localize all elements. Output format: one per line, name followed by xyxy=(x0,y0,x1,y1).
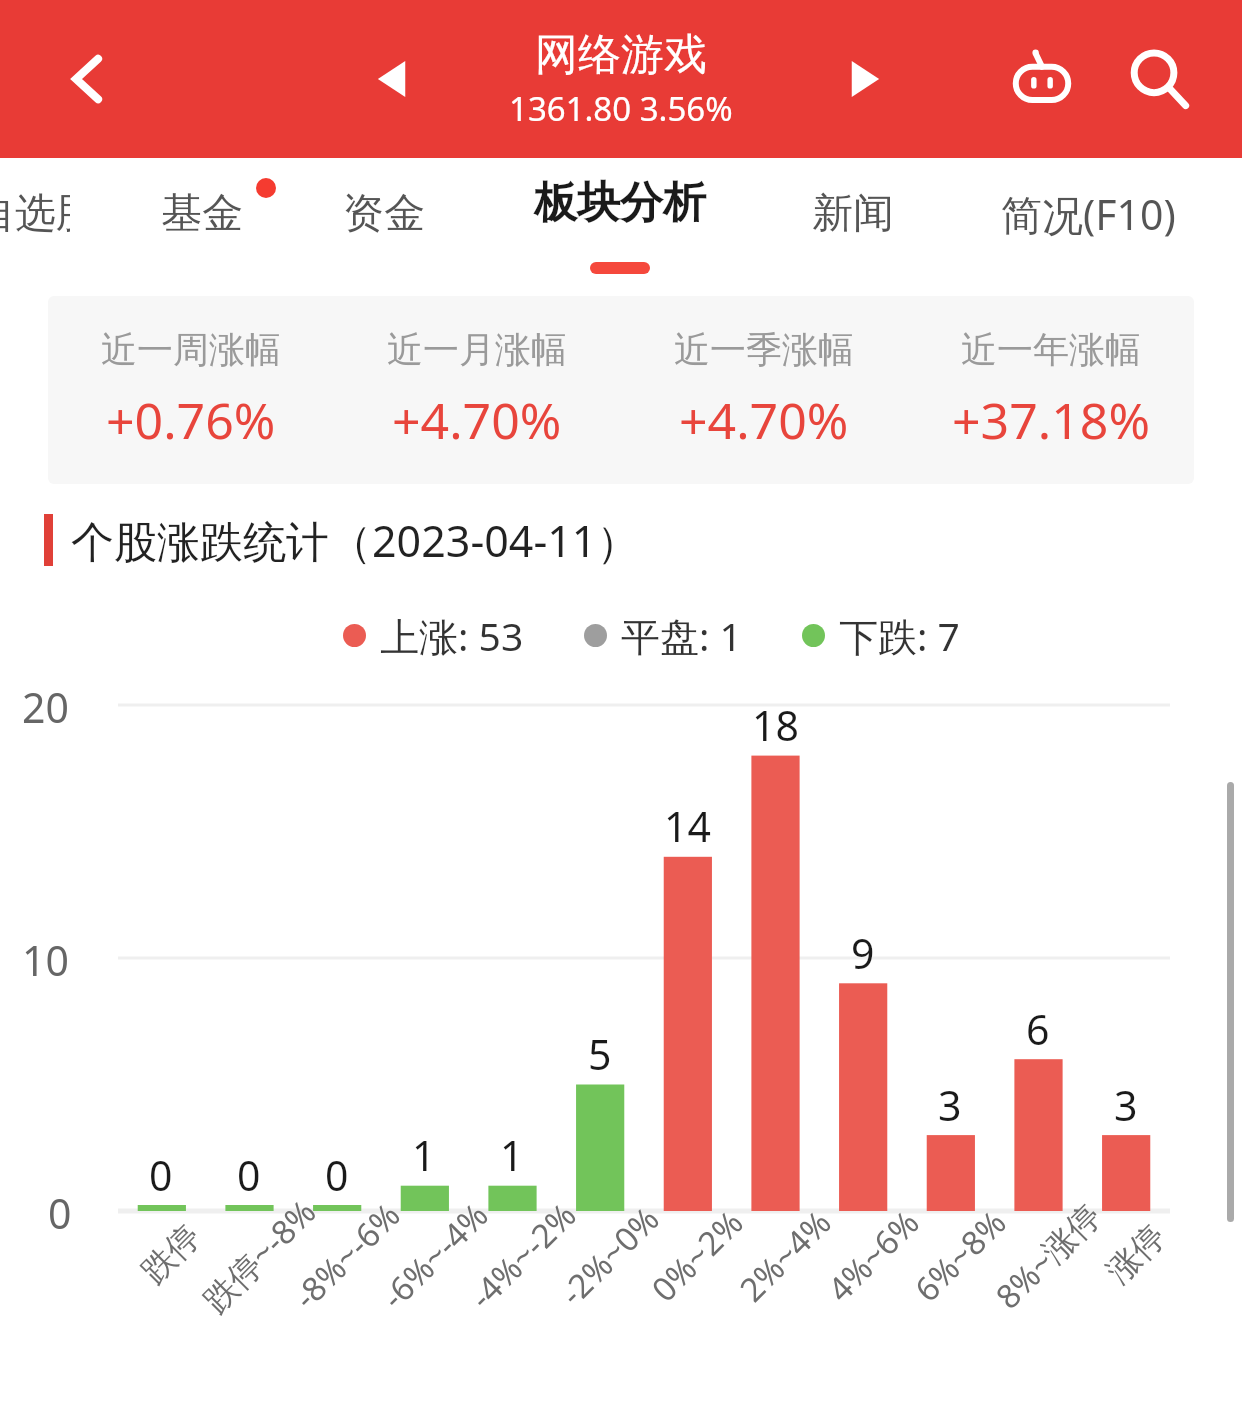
button[interactable]: Search xyxy=(1114,34,1204,124)
button[interactable]: 简况(F10) xyxy=(960,158,1216,270)
staticText: 8%~涨停 xyxy=(985,1193,1111,1318)
staticText: 自选股 xyxy=(0,188,70,240)
staticText: 3 xyxy=(1114,1077,1138,1133)
staticText: 18 xyxy=(752,697,799,753)
staticText: -6%~-4% xyxy=(372,1193,497,1318)
staticText: 跌停 xyxy=(133,1216,209,1292)
staticText: 0%~2% xyxy=(641,1200,752,1311)
button[interactable]: 平盘: 1 xyxy=(584,609,742,662)
button[interactable]: AI assistant xyxy=(997,34,1087,124)
staticText: 近一季涨幅 xyxy=(674,327,854,372)
staticText: 板块分析 xyxy=(534,176,706,230)
button[interactable]: 下跌: 7 xyxy=(802,609,960,662)
staticText: 基金 xyxy=(161,188,243,240)
staticText: 14 xyxy=(664,798,711,854)
staticText: 平盘: 1 xyxy=(621,609,742,662)
staticText: -8%~-6% xyxy=(284,1193,409,1318)
button[interactable]: Previous sector xyxy=(355,41,431,117)
staticText: 下跌: 7 xyxy=(839,609,960,662)
staticText: 3 xyxy=(938,1077,962,1133)
button[interactable]: 资金 xyxy=(306,158,462,270)
staticText: 近一周涨幅 xyxy=(101,327,281,372)
button[interactable]: Next sector xyxy=(826,41,902,117)
staticText: 6%~8% xyxy=(904,1200,1015,1311)
button[interactable]: 近一周涨幅 xyxy=(48,296,334,484)
staticText: 9 xyxy=(851,925,875,981)
staticText: 近一月涨幅 xyxy=(387,327,567,372)
staticText: 6 xyxy=(1026,1001,1050,1057)
staticText: 4%~6% xyxy=(817,1200,928,1311)
button[interactable]: 近一月涨幅 xyxy=(334,296,620,484)
staticText: 1361.80 3.56% xyxy=(509,86,733,131)
staticText: +4.70% xyxy=(679,386,849,454)
button[interactable]: 近一季涨幅 xyxy=(620,296,907,484)
staticText: +37.18% xyxy=(952,386,1150,454)
button[interactable]: 板块分析 xyxy=(500,158,740,290)
staticText: 0 xyxy=(325,1147,349,1203)
button[interactable]: 上涨: 53 xyxy=(343,609,524,662)
staticText: +0.76% xyxy=(106,386,276,454)
staticText: 5 xyxy=(588,1026,612,1082)
staticText: -2%~0% xyxy=(550,1196,669,1315)
button[interactable]: 新闻 xyxy=(775,158,931,270)
staticText: 1 xyxy=(500,1127,524,1183)
staticText: 涨停 xyxy=(1098,1216,1174,1292)
staticText: 近一年涨幅 xyxy=(961,327,1141,372)
staticText: 个股涨跌统计（2023-04-11） xyxy=(71,511,640,570)
staticText: 20 xyxy=(22,679,69,735)
staticText: -4%~-2% xyxy=(460,1193,585,1318)
button[interactable]: 自选股 xyxy=(0,158,70,270)
staticText: 1 xyxy=(412,1127,436,1183)
button[interactable]: Back xyxy=(48,39,128,119)
button[interactable]: 近一年涨幅 xyxy=(907,296,1194,484)
staticText: 简况(F10) xyxy=(1001,186,1176,242)
staticText: 0 xyxy=(149,1147,173,1203)
staticText: 0 xyxy=(237,1147,261,1203)
staticText: 跌停~-8% xyxy=(193,1189,325,1322)
staticText: 2%~4% xyxy=(729,1200,840,1311)
staticText: 资金 xyxy=(343,188,425,240)
staticText: 0 xyxy=(48,1185,72,1241)
staticText: 上涨: 53 xyxy=(380,609,524,662)
staticText: 网络游戏 xyxy=(535,28,707,82)
button[interactable]: 基金 xyxy=(116,158,288,270)
staticText: 10 xyxy=(22,932,69,988)
staticText: +4.70% xyxy=(392,386,562,454)
staticText: 新闻 xyxy=(812,188,894,240)
